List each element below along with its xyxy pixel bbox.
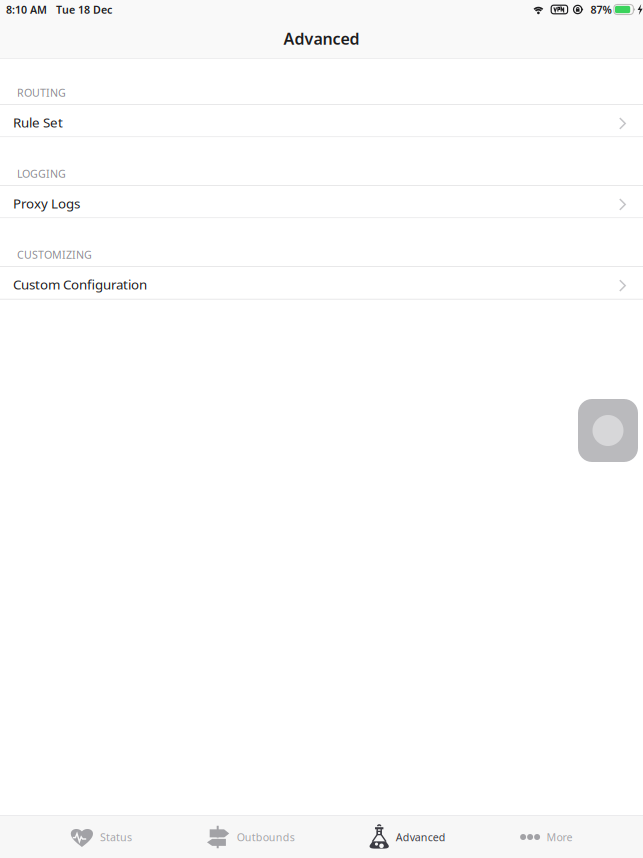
button[interactable]: Custom Configuration xyxy=(0,267,643,299)
staticText: LOGGING xyxy=(17,167,66,181)
staticText: CUSTOMIZING xyxy=(17,248,92,262)
staticText: Proxy Logs xyxy=(13,194,80,212)
staticText: 87% xyxy=(590,2,611,17)
staticText: 8:10 AM xyxy=(6,2,47,17)
button[interactable]: AssistiveTouch xyxy=(578,399,638,462)
button[interactable]: Outbounds xyxy=(202,816,299,858)
button[interactable]: Status xyxy=(66,816,136,858)
staticText: ROUTING xyxy=(17,86,66,100)
staticText: More xyxy=(547,830,573,844)
staticText: Outbounds xyxy=(237,830,295,844)
staticText: Tue 18 Dec xyxy=(56,2,112,17)
staticText: Status xyxy=(100,830,132,844)
staticText: Custom Configuration xyxy=(13,275,147,293)
button[interactable]: Rule Set xyxy=(0,105,643,136)
button[interactable]: Advanced xyxy=(365,816,450,858)
button[interactable]: Proxy Logs xyxy=(0,186,643,217)
button[interactable]: More xyxy=(516,816,577,858)
staticText: Rule Set xyxy=(13,113,63,131)
staticText: Advanced xyxy=(396,830,446,844)
staticText: Advanced xyxy=(283,28,359,49)
